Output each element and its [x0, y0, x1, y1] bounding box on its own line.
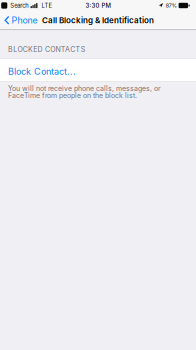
staticText: Call Blocking & Identification: [42, 15, 154, 25]
staticText: Phone: [11, 15, 37, 26]
staticText: 3:30 PM: [85, 2, 110, 9]
button[interactable]: Block Contact...: [0, 58, 196, 82]
staticText: LTE: [42, 2, 53, 9]
staticText: You will not receive phone calls, messag…: [8, 84, 161, 100]
staticText: 87%: [166, 2, 177, 9]
button[interactable]: Phone: [0, 11, 42, 29]
staticText: Search: [10, 2, 28, 9]
staticText: BLOCKED CONTACTS: [8, 45, 86, 54]
staticText: Block Contact...: [8, 66, 76, 77]
